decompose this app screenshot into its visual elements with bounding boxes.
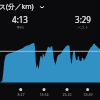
staticText: ベスト xyxy=(77,26,89,31)
button[interactable]: 4:13 xyxy=(5,14,35,31)
button[interactable]: 3:29 xyxy=(68,14,98,31)
staticText: 16:54 xyxy=(36,92,52,97)
staticText: 33:49 xyxy=(80,92,96,97)
staticText: 4:13 xyxy=(12,14,28,25)
other: Change metric xyxy=(39,4,45,10)
staticText: ス(分／km) xyxy=(0,2,34,11)
staticText: 8:27 xyxy=(13,92,29,97)
staticText: 3:29 xyxy=(75,14,91,25)
staticText: 平均 xyxy=(16,26,24,31)
button[interactable]: ス(分／km) xyxy=(0,0,100,13)
staticText: 25:22 xyxy=(59,92,75,97)
